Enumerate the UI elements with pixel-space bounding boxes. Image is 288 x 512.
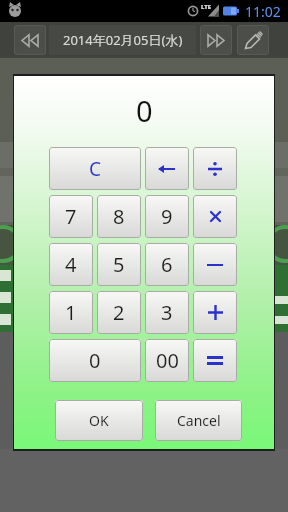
button[interactable] <box>193 339 237 382</box>
button[interactable] <box>145 147 189 190</box>
button[interactable] <box>237 25 269 55</box>
button[interactable]: C <box>49 147 141 190</box>
staticText: 0 <box>136 91 153 130</box>
staticText: 3 <box>161 299 173 326</box>
button[interactable]: 8 <box>97 195 141 238</box>
staticText: 1 <box>65 299 77 326</box>
button[interactable]: 1 <box>49 291 93 334</box>
button[interactable]: 7 <box>49 195 93 238</box>
button[interactable]: 0 <box>49 339 141 382</box>
button[interactable]: Cancel <box>155 400 242 441</box>
staticText: 0 <box>89 347 101 374</box>
staticText: C <box>89 156 102 182</box>
staticText: 8 <box>113 203 125 230</box>
staticText: 11:02 <box>245 2 281 21</box>
button[interactable]: 4 <box>49 243 93 286</box>
button[interactable]: 5 <box>97 243 141 286</box>
staticText: 6 <box>161 251 173 278</box>
button[interactable] <box>14 25 46 55</box>
staticText: 9 <box>161 203 173 230</box>
staticText: 7 <box>65 203 77 230</box>
staticText: 2014年02月05日(水) <box>63 31 183 49</box>
staticText: 4 <box>65 251 77 278</box>
staticText: 2 <box>113 299 125 326</box>
button[interactable]: 2 <box>97 291 141 334</box>
staticText: 00 <box>156 347 179 374</box>
button[interactable]: 6 <box>145 243 189 286</box>
button[interactable]: 00 <box>145 339 189 382</box>
button[interactable] <box>193 147 237 190</box>
staticText: 5 <box>113 251 125 278</box>
staticText: Cancel <box>177 411 221 430</box>
button[interactable]: 3 <box>145 291 189 334</box>
staticText: LTE <box>201 3 212 11</box>
staticText: OK <box>89 411 109 430</box>
button[interactable] <box>200 25 232 55</box>
button[interactable] <box>193 195 237 238</box>
button[interactable] <box>193 291 237 334</box>
button[interactable]: 2014年02月05日(水) <box>49 25 196 55</box>
button[interactable]: 9 <box>145 195 189 238</box>
button[interactable]: OK <box>55 400 143 441</box>
button[interactable] <box>193 243 237 286</box>
